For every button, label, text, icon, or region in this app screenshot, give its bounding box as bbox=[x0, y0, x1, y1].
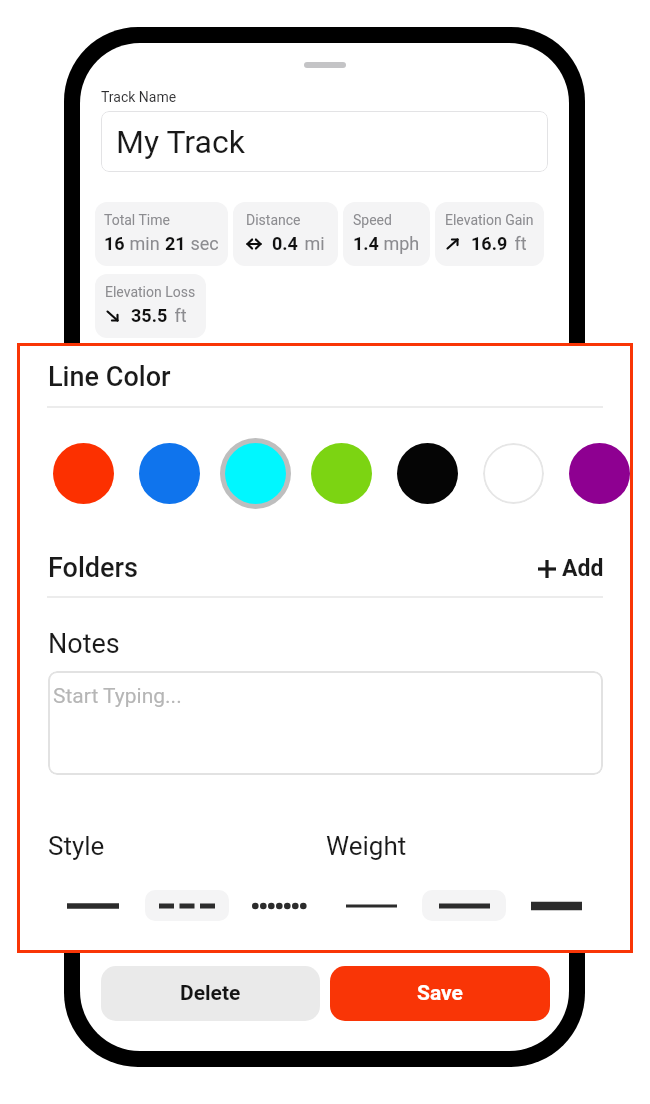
staticText: Add bbox=[562, 555, 604, 582]
staticText: 35.5 bbox=[131, 305, 168, 326]
button[interactable]: Speed bbox=[343, 202, 430, 266]
button[interactable]: Elevation Loss bbox=[95, 274, 206, 338]
staticText: Elevation Gain bbox=[445, 212, 534, 228]
button[interactable]: Color option bbox=[225, 437, 311, 509]
staticText: 0.4 bbox=[272, 233, 298, 254]
button[interactable]: Color option bbox=[569, 437, 650, 509]
button[interactable]: Line option bbox=[329, 890, 413, 921]
staticText: Folders bbox=[48, 552, 139, 584]
staticText: mph bbox=[379, 233, 420, 254]
button[interactable]: Line option bbox=[51, 890, 135, 921]
button[interactable]: Color option bbox=[139, 437, 225, 509]
button[interactable]: Color option bbox=[397, 437, 483, 509]
staticText: 16.9 bbox=[471, 233, 508, 254]
button[interactable]: Line option bbox=[514, 890, 598, 921]
staticText: sec bbox=[186, 233, 219, 254]
button[interactable]: Delete bbox=[101, 966, 320, 1021]
button[interactable]: Start Typing... bbox=[48, 671, 603, 775]
staticText: mi bbox=[300, 233, 325, 254]
staticText: Weight bbox=[326, 831, 407, 861]
button[interactable]: Color option bbox=[311, 437, 397, 509]
button[interactable]: Save bbox=[330, 966, 550, 1021]
button[interactable]: Total Time bbox=[95, 202, 228, 266]
staticText: min bbox=[125, 233, 165, 254]
staticText: ft bbox=[170, 305, 187, 326]
staticText: My Track bbox=[116, 123, 245, 161]
staticText: Speed bbox=[353, 212, 392, 228]
button[interactable]: Line option bbox=[145, 890, 229, 921]
button[interactable]: Color option bbox=[483, 437, 569, 509]
staticText: Notes bbox=[48, 628, 120, 660]
staticText: Total Time bbox=[104, 212, 170, 228]
staticText: ft bbox=[510, 233, 527, 254]
staticText: Delete bbox=[180, 981, 241, 1006]
staticText: Elevation Loss bbox=[105, 284, 196, 300]
staticText: Track Name bbox=[101, 89, 177, 105]
staticText: Save bbox=[417, 981, 463, 1006]
staticText: Line Color bbox=[48, 361, 171, 393]
button[interactable]: Elevation Gain bbox=[435, 202, 544, 266]
button[interactable]: Line option bbox=[237, 890, 321, 921]
button[interactable]: My Track bbox=[101, 111, 548, 172]
button[interactable]: Color option bbox=[53, 437, 139, 509]
staticText: 16 bbox=[104, 233, 125, 254]
staticText: Distance bbox=[246, 212, 301, 228]
staticText: 21 bbox=[165, 233, 186, 254]
button[interactable]: Distance bbox=[233, 202, 338, 266]
button[interactable]: Add bbox=[532, 549, 610, 588]
button[interactable]: Line option bbox=[422, 890, 506, 921]
staticText: Start Typing... bbox=[53, 684, 182, 709]
staticText: Style bbox=[48, 831, 105, 861]
staticText: 1.4 bbox=[353, 233, 379, 254]
